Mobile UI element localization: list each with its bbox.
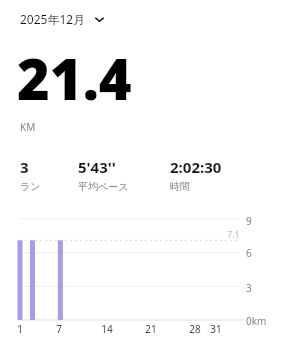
staticText: 6 xyxy=(246,246,252,260)
button[interactable]: 2025年12月 xyxy=(18,8,107,30)
staticText: 時間 xyxy=(170,180,190,193)
staticText: 21 xyxy=(145,322,157,336)
staticText: 21.4 xyxy=(17,40,132,116)
staticText: 28 xyxy=(189,322,201,336)
button[interactable]: 5'43'' xyxy=(78,157,170,193)
staticText: 2:02:30 xyxy=(170,157,222,177)
staticText: 1 xyxy=(17,322,23,336)
staticText: KM xyxy=(20,120,36,134)
staticText: 7.1 xyxy=(227,228,240,240)
staticText: 0km xyxy=(246,314,267,328)
staticText: ラン xyxy=(20,180,41,193)
staticText: 7 xyxy=(56,322,62,336)
staticText: 31 xyxy=(210,322,222,336)
staticText: 2025年12月 xyxy=(20,11,86,27)
button[interactable]: 2:02:30 xyxy=(170,157,280,193)
staticText: 3 xyxy=(20,157,29,177)
staticText: 5'43'' xyxy=(78,157,116,177)
staticText: 9 xyxy=(246,214,252,228)
staticText: 14 xyxy=(101,322,113,336)
staticText: 3 xyxy=(246,281,252,295)
button[interactable]: 3 xyxy=(20,157,78,193)
staticText: 平均ペース xyxy=(78,180,129,193)
